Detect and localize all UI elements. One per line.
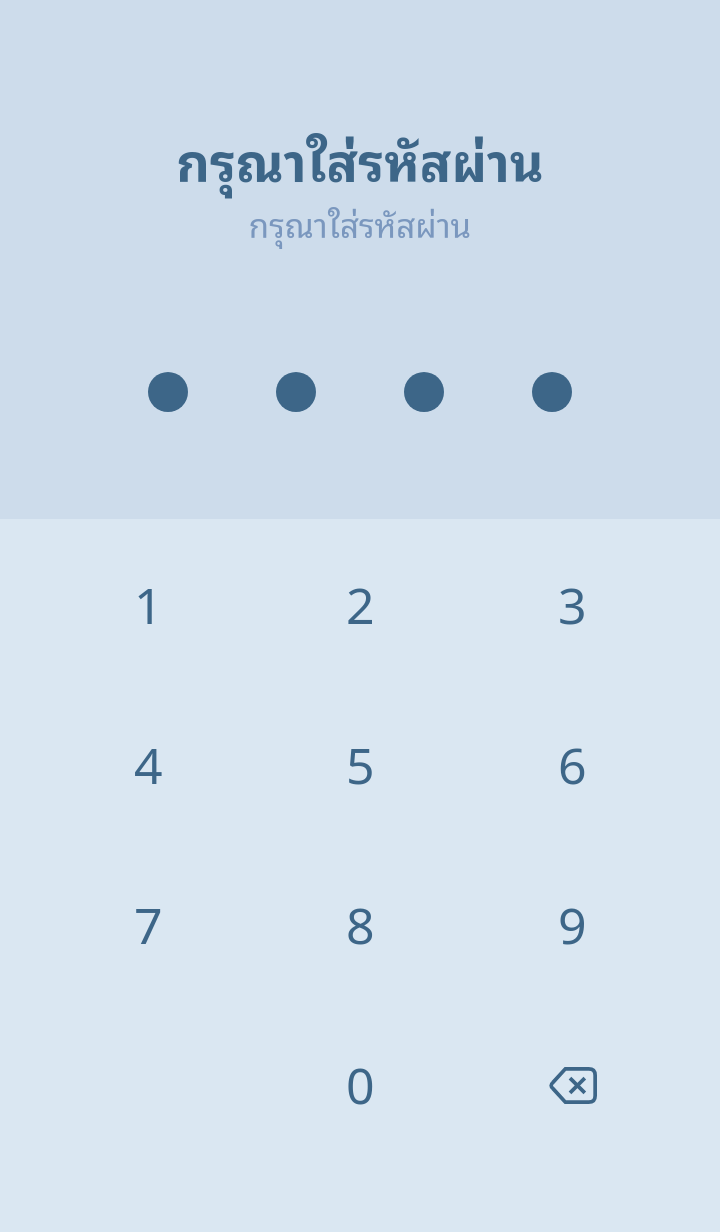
staticText: 5 [346, 731, 375, 799]
staticText: 6 [558, 731, 587, 799]
staticText: กรุณาใส่รหัสผ่าน [0, 117, 720, 200]
staticText: 0 [346, 1051, 375, 1119]
button[interactable]: 0 [254, 1005, 466, 1165]
staticText: 2 [346, 571, 375, 639]
staticText: 1 [134, 571, 163, 639]
staticText: 4 [134, 731, 163, 799]
staticText: 3 [558, 571, 587, 639]
button[interactable]: 1 [42, 519, 254, 685]
staticText: กรุณาใส่รหัสผ่าน [0, 197, 720, 250]
staticText: 7 [134, 891, 163, 959]
button[interactable]: 9 [466, 845, 678, 1005]
button[interactable]: 4 [42, 685, 254, 845]
button[interactable]: 2 [254, 519, 466, 685]
button[interactable]: 5 [254, 685, 466, 845]
staticText: 9 [558, 891, 587, 959]
button[interactable]: 7 [42, 845, 254, 1005]
button[interactable]: Backspace [466, 1005, 678, 1165]
button[interactable]: 3 [466, 519, 678, 685]
other: Backspace [548, 1067, 597, 1104]
button[interactable]: 8 [254, 845, 466, 1005]
button[interactable]: 6 [466, 685, 678, 845]
staticText: 8 [346, 891, 375, 959]
